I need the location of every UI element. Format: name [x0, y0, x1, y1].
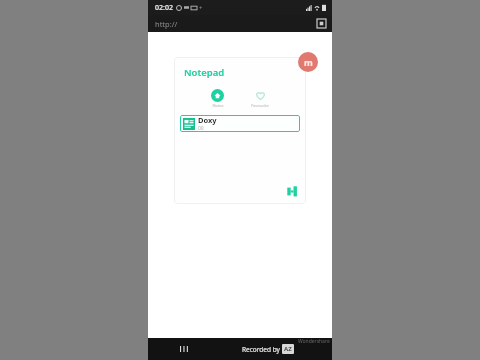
staticText: AZ [284, 345, 292, 353]
staticText: + [199, 4, 203, 12]
button[interactable]: Favourite [247, 88, 273, 109]
button[interactable]: Badge [298, 52, 318, 72]
staticText: Notepad [184, 66, 225, 79]
staticText: http:// [155, 19, 178, 29]
staticText: 00 [198, 125, 204, 132]
button[interactable]: Recents [180, 344, 190, 354]
staticText: Doxy [198, 115, 217, 125]
staticText: Notes [212, 103, 224, 108]
button[interactable]: Add note [286, 185, 299, 198]
staticText: 02:02 [155, 3, 173, 13]
staticText: Favourite [251, 103, 269, 108]
staticText: Recorded by [242, 345, 280, 354]
button[interactable]: Doxy [180, 115, 300, 132]
staticText: m [304, 56, 313, 68]
staticText: Wondershare [298, 338, 330, 345]
button[interactable]: Notes [207, 88, 228, 109]
button[interactable]: Tabs [317, 19, 326, 28]
